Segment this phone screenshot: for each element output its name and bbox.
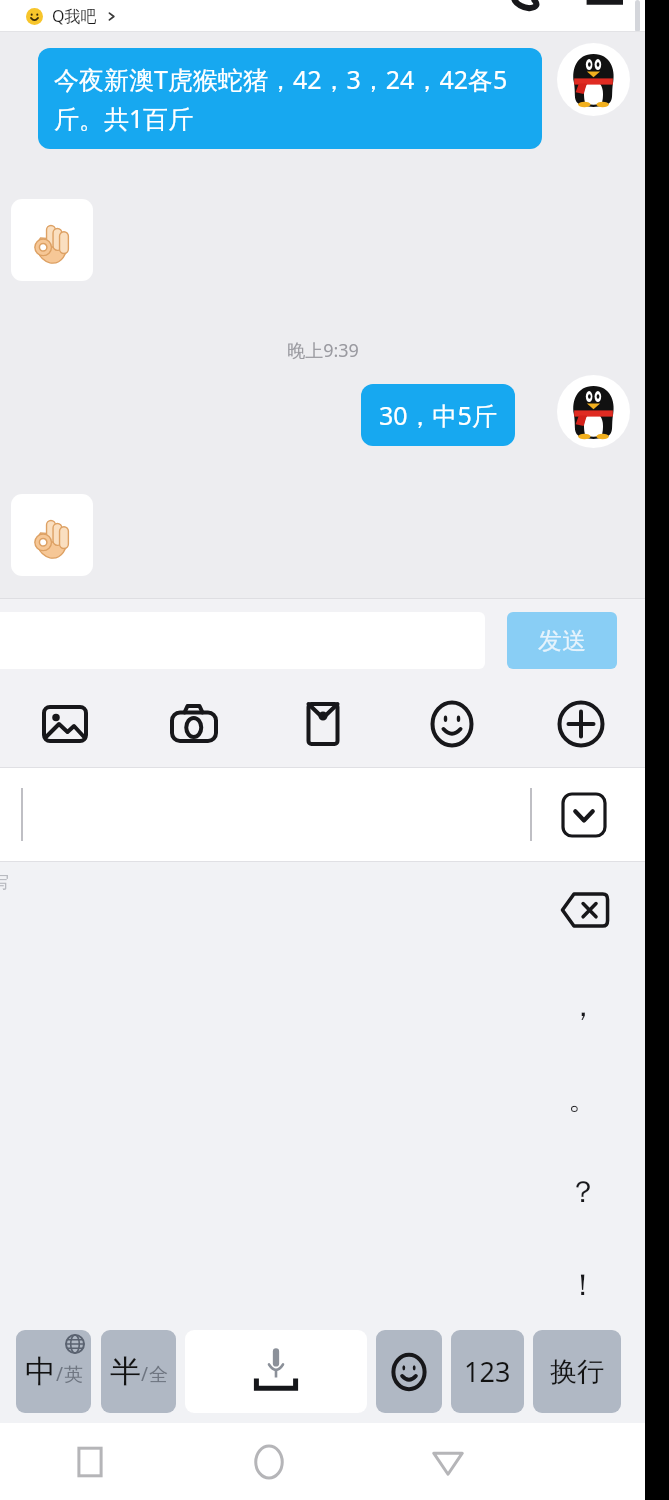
- button[interactable]: Recents: [0, 1423, 179, 1500]
- staticText: 中: [25, 1352, 56, 1391]
- other: Minimize: [571, 0, 623, 10]
- staticText: /: [141, 1361, 149, 1387]
- staticText: 换行: [550, 1355, 604, 1389]
- staticText: 今夜新澳T虎猴蛇猪，42，3，24，42各5斤。共1百斤: [54, 62, 526, 135]
- staticText: Q我吧: [52, 5, 97, 27]
- button[interactable]: 换行: [533, 1330, 621, 1413]
- button[interactable]: 30，中5斤: [361, 384, 515, 446]
- staticText: ？: [568, 1173, 598, 1211]
- button[interactable]: 中: [16, 1330, 91, 1413]
- button[interactable]: ？: [552, 1161, 614, 1223]
- button[interactable]: Red packet: [258, 681, 387, 767]
- staticText: 发送: [538, 626, 586, 656]
- staticText: 123: [464, 1353, 511, 1390]
- button[interactable]: Back: [358, 1423, 537, 1500]
- button[interactable]: ，: [552, 975, 614, 1037]
- staticText: 英: [64, 1363, 83, 1387]
- button[interactable]: Camera: [129, 681, 258, 767]
- button[interactable]: 123: [451, 1330, 524, 1413]
- staticText: ！: [568, 1266, 598, 1304]
- button[interactable]: ！: [552, 1254, 614, 1316]
- button[interactable]: Backspace: [561, 890, 609, 930]
- staticText: 全: [149, 1363, 168, 1387]
- other: Call: [505, 0, 547, 16]
- staticText: 写: [0, 872, 9, 893]
- button[interactable]: Avatar: [557, 375, 630, 448]
- button[interactable]: Collapse keyboard: [561, 792, 607, 838]
- button[interactable]: 发送: [507, 612, 617, 669]
- button[interactable]: Emoji keyboard: [376, 1330, 442, 1413]
- button[interactable]: Q我吧: [26, 5, 118, 27]
- button[interactable]: More: [516, 681, 645, 767]
- staticText: /: [56, 1361, 64, 1387]
- button[interactable]: 今夜新澳T虎猴蛇猪，42，3，24，42各5斤。共1百斤: [38, 48, 542, 149]
- staticText: ，: [568, 987, 598, 1025]
- staticText: 晚上9:39: [287, 338, 359, 363]
- button[interactable]: OK hand sticker: [11, 199, 93, 281]
- button[interactable]: Avatar: [557, 43, 630, 116]
- button[interactable]: Emoji: [387, 681, 516, 767]
- staticText: 半: [110, 1352, 141, 1391]
- button[interactable]: Space and voice input: [185, 1330, 367, 1413]
- staticText: 。: [568, 1080, 598, 1118]
- button[interactable]: OK hand sticker: [11, 494, 93, 576]
- button[interactable]: Home: [179, 1423, 358, 1500]
- button[interactable]: 半: [101, 1330, 176, 1413]
- button[interactable]: Photo: [0, 681, 129, 767]
- staticText: 30，中5斤: [379, 398, 497, 432]
- button[interactable]: 。: [552, 1068, 614, 1130]
